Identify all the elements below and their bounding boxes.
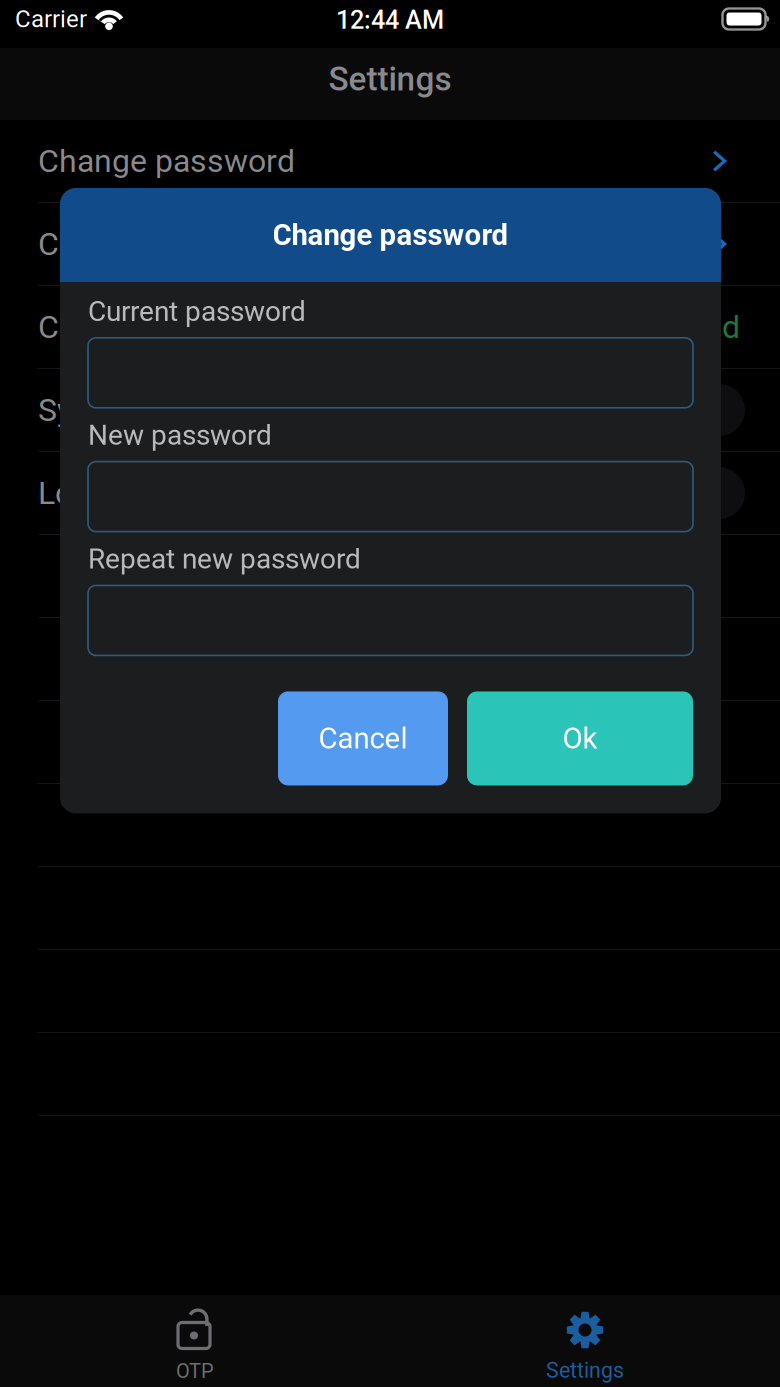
staticText: Sync	[38, 391, 107, 429]
staticText: Change password	[38, 142, 295, 180]
staticText: Carrier	[15, 5, 87, 33]
button[interactable]: Ok	[467, 691, 693, 785]
button[interactable]: Check for updates	[0, 286, 780, 369]
staticText: Settings	[328, 59, 451, 99]
staticText: 12:44 AM	[336, 5, 444, 35]
staticText: Current password	[88, 295, 306, 328]
staticText: Ok	[562, 721, 597, 756]
staticText: Lock on exit	[38, 474, 209, 512]
staticText: Enabled	[626, 308, 740, 346]
button[interactable]: Sync	[0, 369, 780, 452]
staticText: Change PIN	[38, 225, 207, 263]
button[interactable]: Cancel	[278, 691, 448, 785]
staticText: Settings	[546, 1358, 624, 1383]
staticText: Repeat new password	[88, 543, 361, 575]
button[interactable]: Change PIN	[0, 203, 780, 286]
staticText: New password	[88, 419, 272, 452]
staticText: OTP	[176, 1360, 214, 1383]
button[interactable]: Change password	[0, 120, 780, 203]
button[interactable]: Settings	[390, 1295, 780, 1387]
staticText: Check for updates	[38, 308, 298, 346]
staticText: Change password	[272, 218, 508, 252]
button[interactable]: Lock on exit	[0, 452, 780, 535]
button[interactable]: OTP	[0, 1295, 390, 1387]
staticText: Cancel	[318, 721, 407, 756]
